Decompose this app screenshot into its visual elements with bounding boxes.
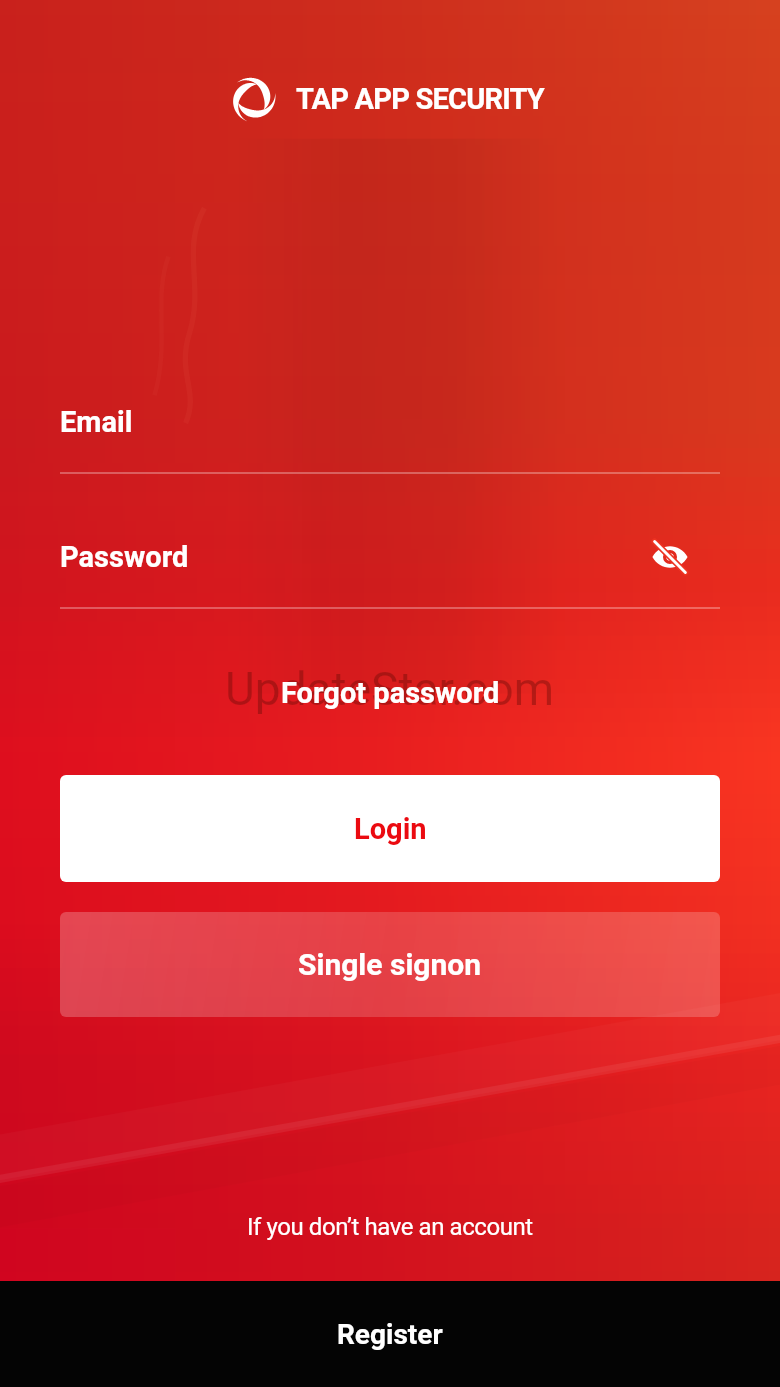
button[interactable]: Single signon	[60, 912, 720, 1017]
staticText: If you don’t have an account	[247, 1213, 533, 1241]
button[interactable]: Login	[60, 775, 720, 882]
staticText: Register	[337, 1318, 443, 1351]
staticText: Email	[60, 405, 133, 439]
button[interactable]: Register	[0, 1281, 780, 1387]
staticText: TAP APP SECURITY	[296, 82, 544, 116]
staticText: Forgot password	[281, 676, 500, 710]
staticText: Single signon	[298, 947, 482, 982]
button[interactable]: Forgot password	[265, 668, 516, 718]
staticText: Login	[354, 812, 427, 846]
staticText: UpdateStar.com	[225, 662, 555, 716]
staticText: Password	[60, 540, 189, 574]
button[interactable]: Show password	[648, 535, 692, 579]
